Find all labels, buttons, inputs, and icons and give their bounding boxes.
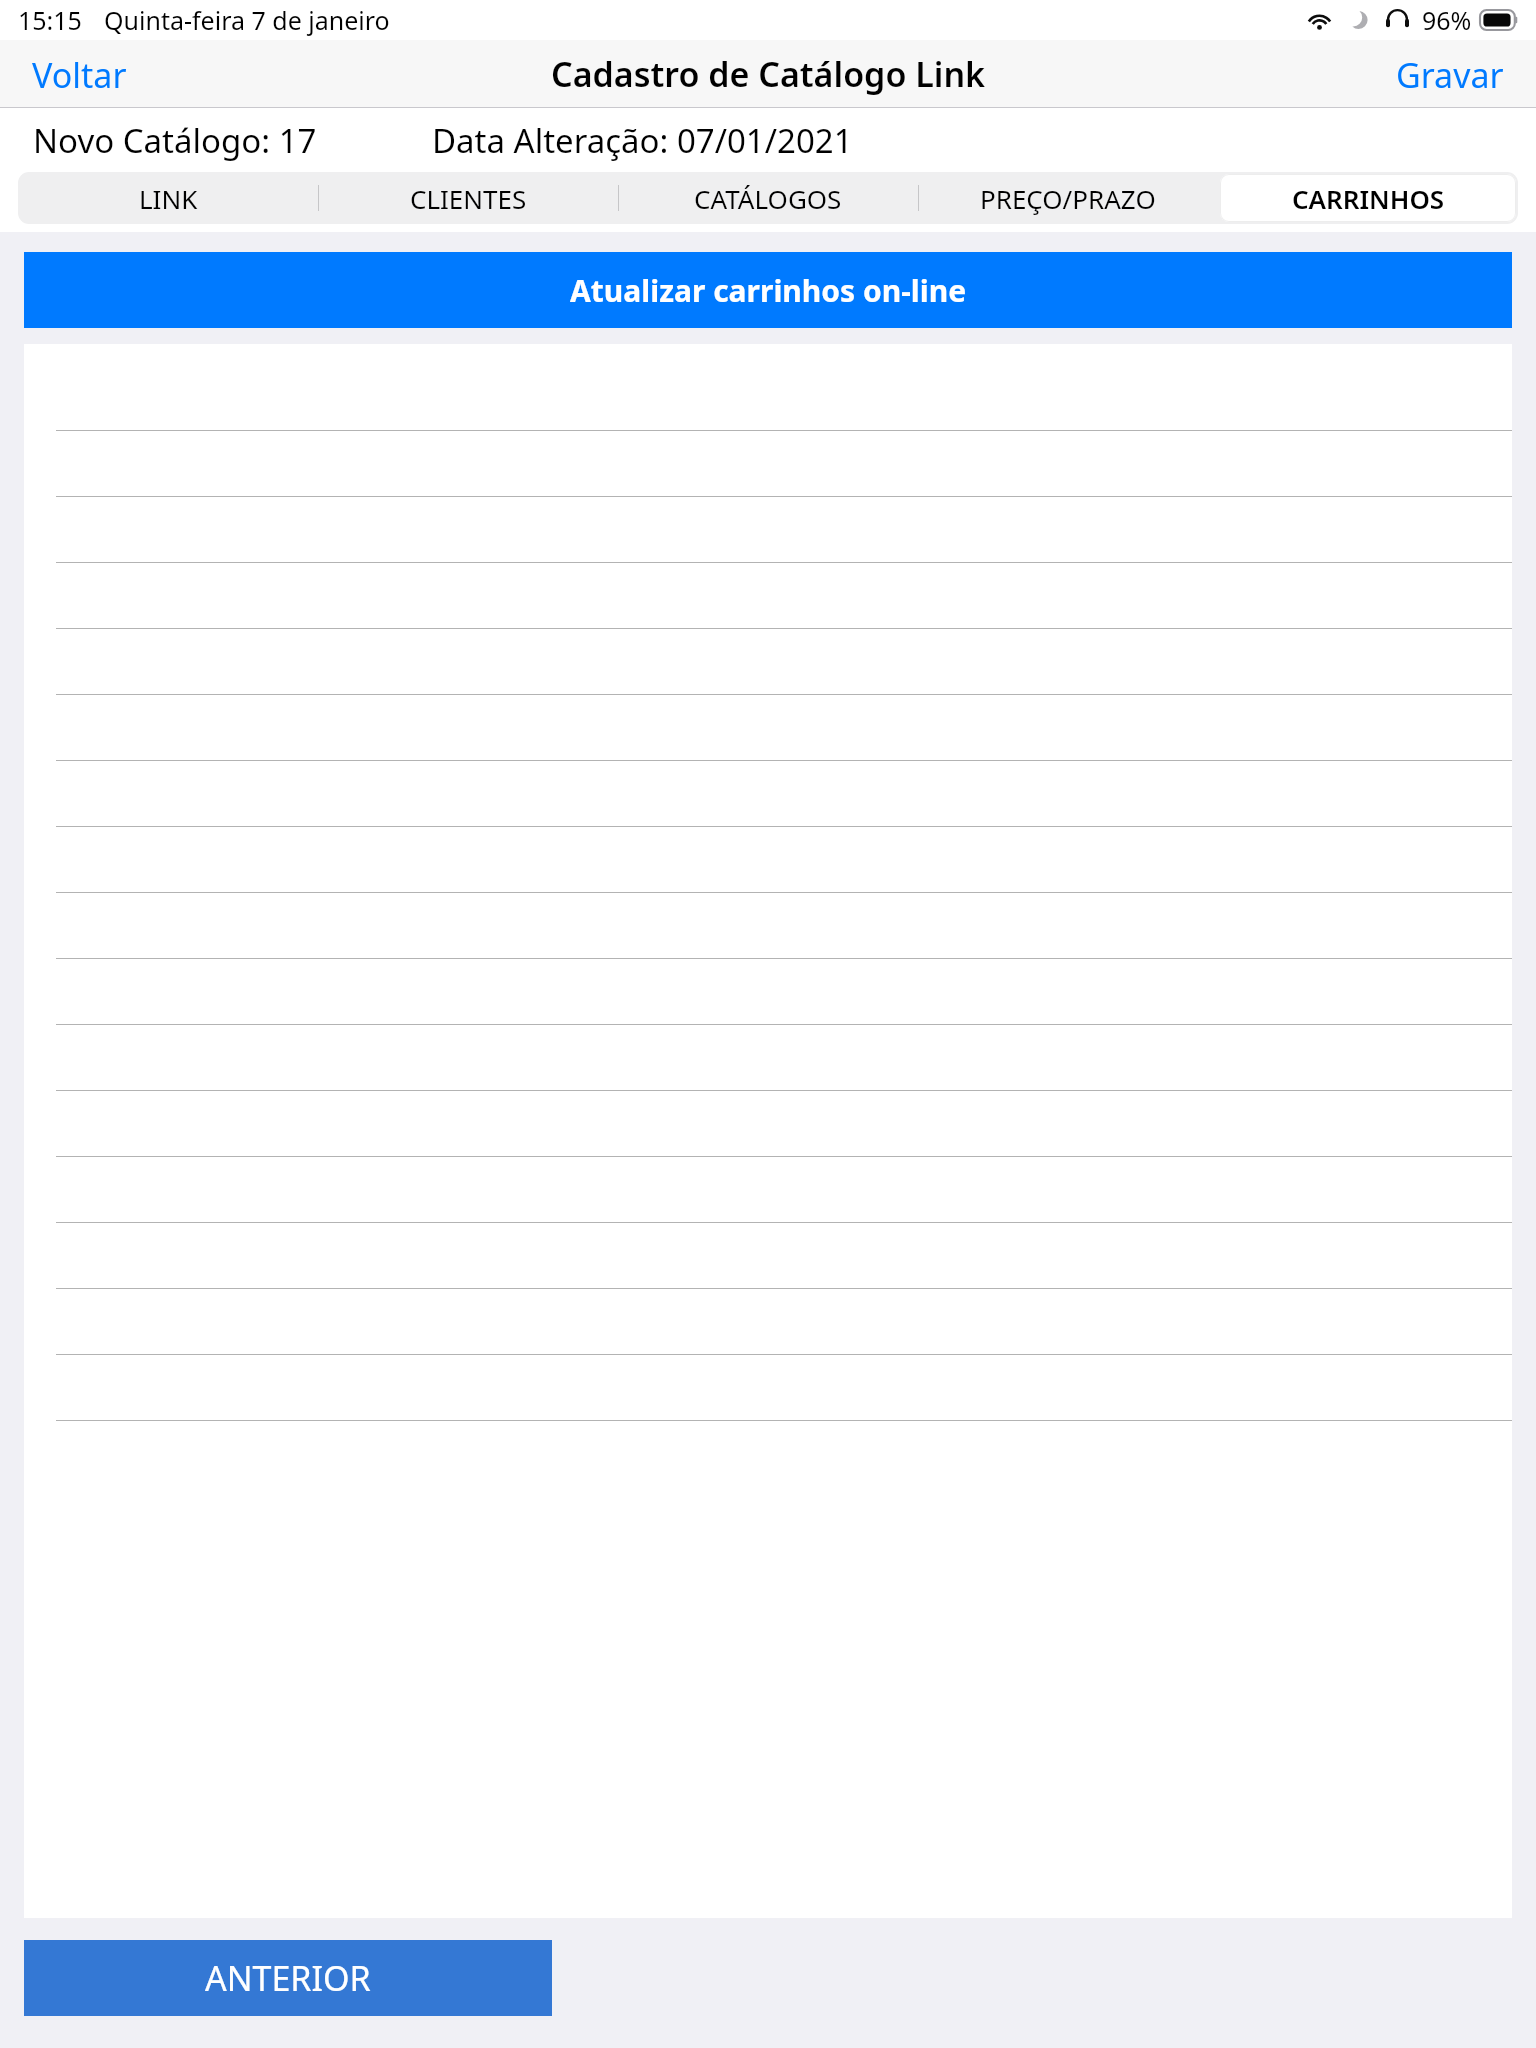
button[interactable] [24, 695, 1512, 761]
staticText: ANTERIOR [205, 1955, 371, 2001]
staticText: Data Alteração: 07/01/2021 [432, 118, 853, 163]
button[interactable] [24, 959, 1512, 1025]
staticText: Cadastro de Catálogo Link [551, 51, 986, 97]
button[interactable] [24, 1355, 1512, 1421]
staticText: Gravar [1396, 52, 1504, 96]
button[interactable]: Atualizar carrinhos on-line [24, 252, 1512, 328]
button[interactable]: Voltar [0, 40, 159, 108]
button[interactable] [24, 563, 1512, 629]
button[interactable] [24, 1289, 1512, 1355]
staticText: LINK [139, 181, 198, 216]
staticText: 96% [1422, 3, 1472, 37]
button[interactable]: CARRINHOS [1218, 172, 1518, 224]
button[interactable]: LINK [18, 172, 318, 224]
button[interactable] [24, 893, 1512, 959]
button[interactable] [24, 1091, 1512, 1157]
staticText: 15:15 [18, 3, 82, 37]
button[interactable] [24, 629, 1512, 695]
staticText: Novo Catálogo: 17 [33, 118, 317, 163]
button[interactable] [24, 344, 1512, 431]
button[interactable] [24, 1157, 1512, 1223]
button[interactable]: Gravar [1364, 40, 1536, 108]
button[interactable]: CLIENTES [318, 172, 618, 224]
staticText: CATÁLOGOS [694, 181, 842, 216]
staticText: Voltar [32, 52, 127, 96]
button[interactable] [24, 1223, 1512, 1289]
button[interactable] [24, 497, 1512, 563]
staticText: Atualizar carrinhos on-line [570, 270, 967, 311]
button[interactable] [24, 827, 1512, 893]
button[interactable] [24, 761, 1512, 827]
staticText: Quinta-feira 7 de janeiro [104, 3, 390, 37]
staticText: CLIENTES [410, 181, 527, 216]
button[interactable]: CATÁLOGOS [618, 172, 918, 224]
button[interactable]: PREÇO/PRAZO [918, 172, 1218, 224]
staticText: CARRINHOS [1292, 181, 1445, 216]
button[interactable]: ANTERIOR [24, 1940, 552, 2016]
button[interactable] [24, 431, 1512, 497]
button[interactable] [24, 1025, 1512, 1091]
staticText: PREÇO/PRAZO [980, 181, 1156, 216]
